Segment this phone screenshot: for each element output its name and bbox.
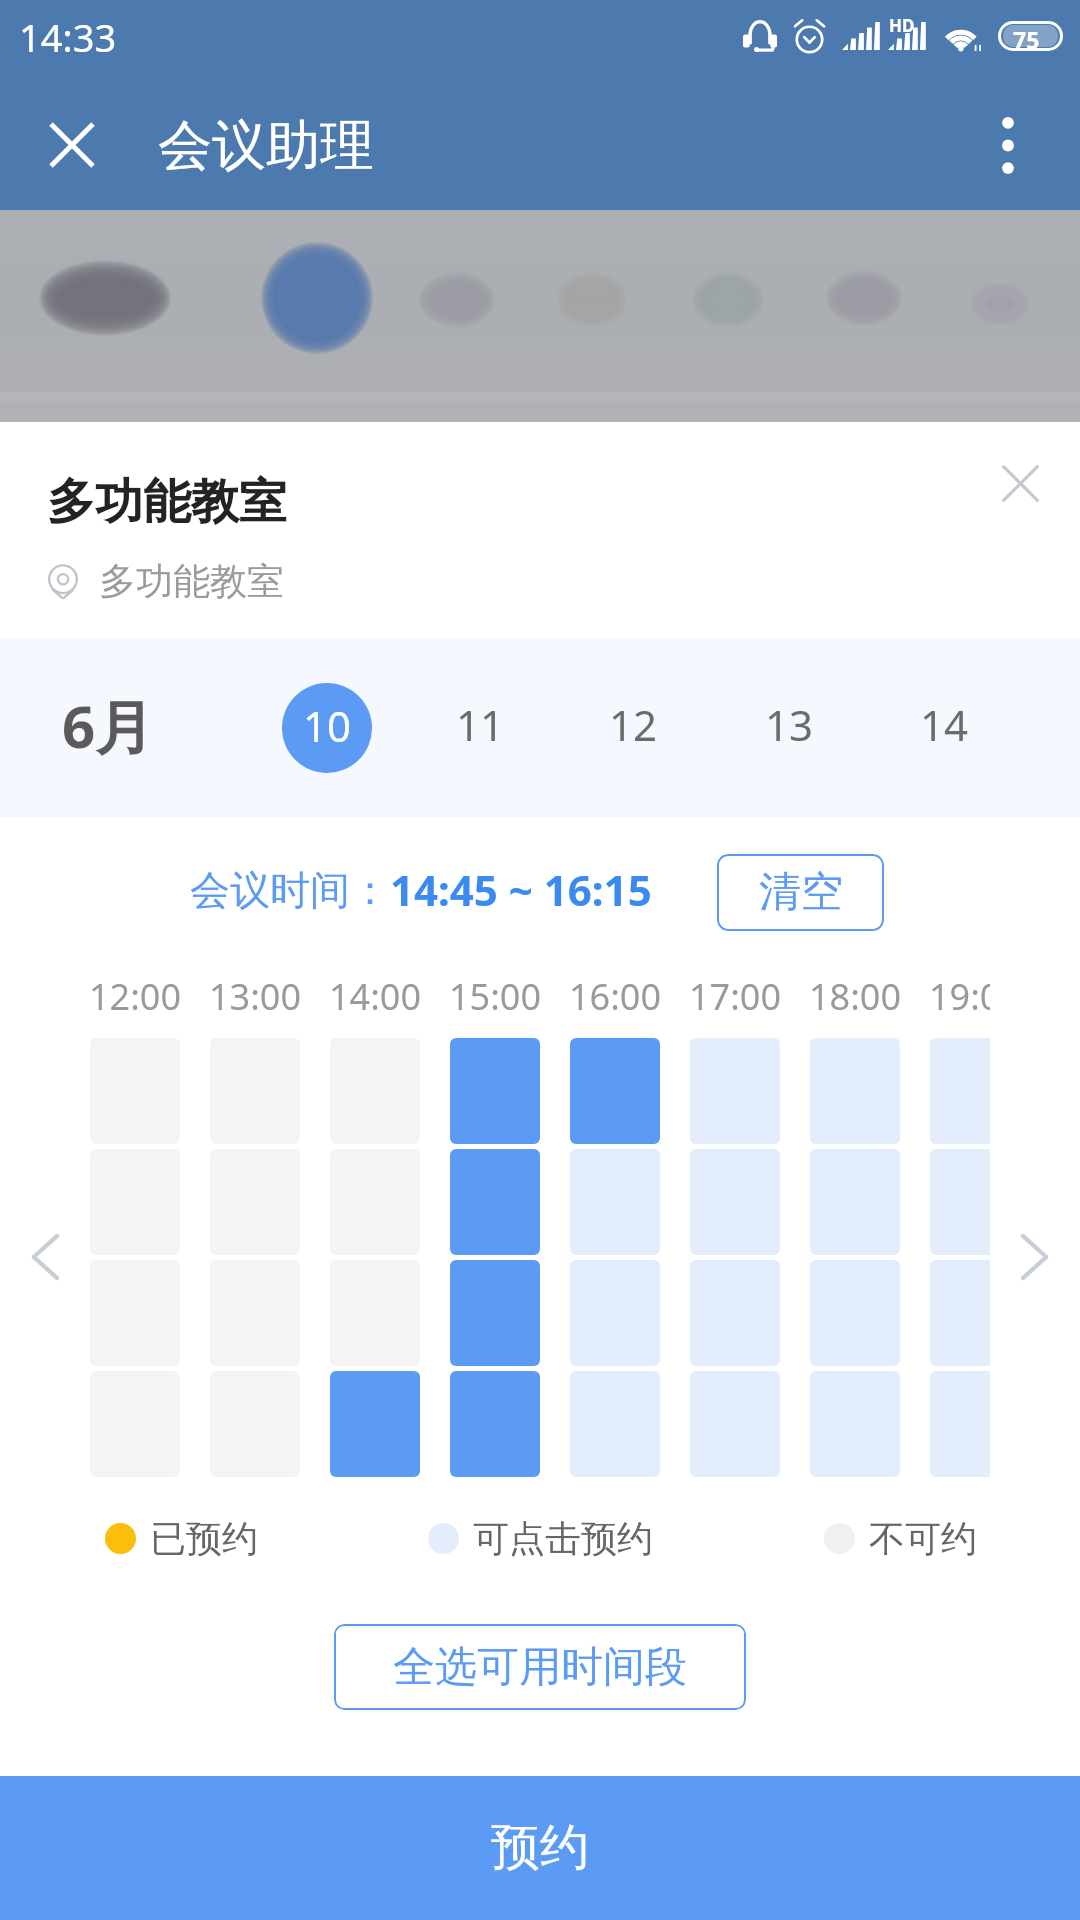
button[interactable]: Close (28, 101, 116, 189)
staticText: 18:00 (795, 972, 915, 1021)
staticText: 15:00 (435, 972, 555, 1021)
staticText: 13 (765, 696, 814, 753)
button[interactable]: 10 (282, 683, 372, 773)
staticText: 会议时间： (190, 865, 390, 915)
button[interactable]: time slot (450, 1260, 540, 1366)
button[interactable]: time slot (330, 1371, 420, 1477)
staticText: 16:00 (555, 972, 675, 1021)
button[interactable]: time slot (450, 1371, 540, 1477)
staticText: 清空 (759, 866, 843, 919)
button[interactable]: 13 (744, 683, 834, 773)
staticText: 预约 (491, 1817, 589, 1879)
staticText: 可点击预约 (473, 1516, 653, 1561)
staticText: 已预约 (150, 1516, 258, 1561)
staticText: HD (889, 14, 915, 37)
staticText: 不可约 (869, 1516, 977, 1561)
staticText: 6月 (62, 686, 154, 765)
staticText: 全选可用时间段 (393, 1641, 687, 1694)
staticText: 会议助理 (158, 112, 374, 180)
button[interactable]: time slot (450, 1038, 540, 1144)
staticText: 多功能教室 (47, 472, 287, 532)
staticText: 13:00 (195, 972, 315, 1021)
staticText: 75 (1013, 24, 1040, 48)
button[interactable]: time slot (450, 1149, 540, 1255)
button[interactable]: Dismiss (970, 433, 1070, 533)
staticText: 19:00 (915, 972, 990, 1021)
button[interactable]: 12 (588, 683, 678, 773)
staticText: 17:00 (675, 972, 795, 1021)
button[interactable]: time slot (570, 1038, 660, 1144)
staticText: 14:45 ~ 16:15 (390, 861, 652, 918)
button[interactable]: 11 (435, 683, 525, 773)
staticText: 11 (456, 696, 505, 753)
button[interactable]: 清空 (717, 854, 884, 931)
button[interactable]: 14 (899, 683, 989, 773)
button[interactable]: Next (1011, 1235, 1055, 1279)
staticText: 多功能教室 (99, 558, 284, 605)
staticText: 12:00 (90, 972, 195, 1021)
staticText: 10 (303, 697, 352, 754)
staticText: 14 (920, 696, 969, 753)
button[interactable]: Previous (25, 1235, 69, 1279)
button[interactable]: 预约 (0, 1776, 1080, 1920)
button[interactable]: More options (966, 103, 1050, 187)
staticText: 12 (609, 696, 658, 753)
button[interactable]: 全选可用时间段 (334, 1624, 746, 1710)
staticText: 14:00 (315, 972, 435, 1021)
staticText: 14:33 (19, 11, 117, 63)
